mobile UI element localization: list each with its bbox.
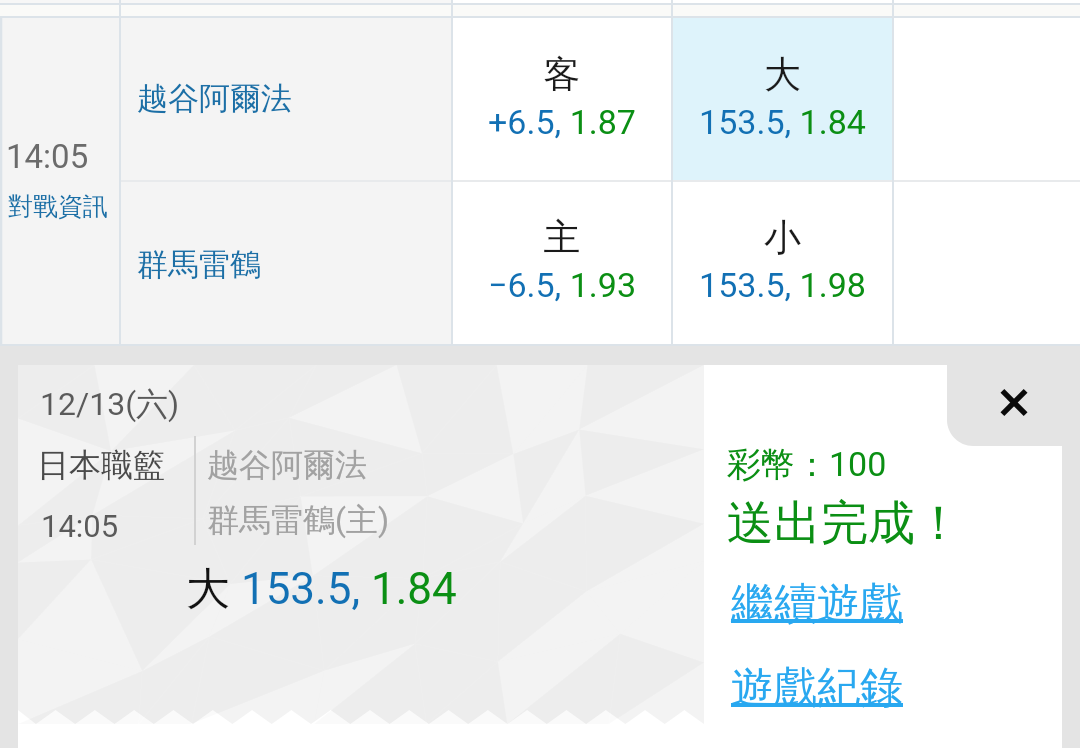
button[interactable] [0, 18, 120, 345]
button[interactable]: 大 [672, 18, 893, 181]
staticText: 153.5, 1.98 [672, 265, 893, 305]
staticText: 彩幣：100 [727, 443, 887, 486]
button[interactable]: 小 [672, 181, 893, 345]
button[interactable]: 繼續遊戲 [731, 577, 911, 639]
staticText: −6.5, 1.93 [452, 265, 672, 305]
staticText: 送出完成！ [727, 494, 962, 553]
staticText: 越谷阿爾法 [207, 445, 367, 485]
button[interactable]: 客 [452, 18, 672, 181]
button[interactable]: 遊戲紀錄 [731, 661, 911, 723]
staticText: 對戰資訊 [8, 191, 108, 222]
staticText: 群馬雷鶴(主) [207, 500, 390, 540]
staticText: 遊戲紀錄 [731, 661, 903, 715]
staticText: 繼續遊戲 [731, 577, 903, 631]
staticText: 越谷阿爾法 [137, 79, 292, 118]
staticText: 小 [672, 214, 893, 261]
staticText: 大 153.5, 1.84 [186, 562, 457, 617]
staticText: 14:05 [6, 137, 89, 176]
button[interactable] [893, 18, 1080, 345]
button[interactable]: 主 [452, 181, 672, 345]
staticText: 14:05 [41, 508, 119, 544]
staticText: 主 [452, 214, 672, 261]
staticText: 153.5, 1.84 [672, 102, 893, 142]
staticText: 客 [452, 51, 672, 98]
staticText: 大 [672, 51, 893, 98]
staticText: 群馬雷鶴 [137, 245, 261, 284]
staticText: 12/13(六) [40, 384, 180, 424]
button[interactable]: Close [947, 365, 1062, 446]
staticText: 日本職籃 [37, 445, 165, 485]
button[interactable] [120, 181, 452, 345]
staticText: +6.5, 1.87 [452, 102, 672, 142]
button[interactable] [120, 18, 452, 181]
